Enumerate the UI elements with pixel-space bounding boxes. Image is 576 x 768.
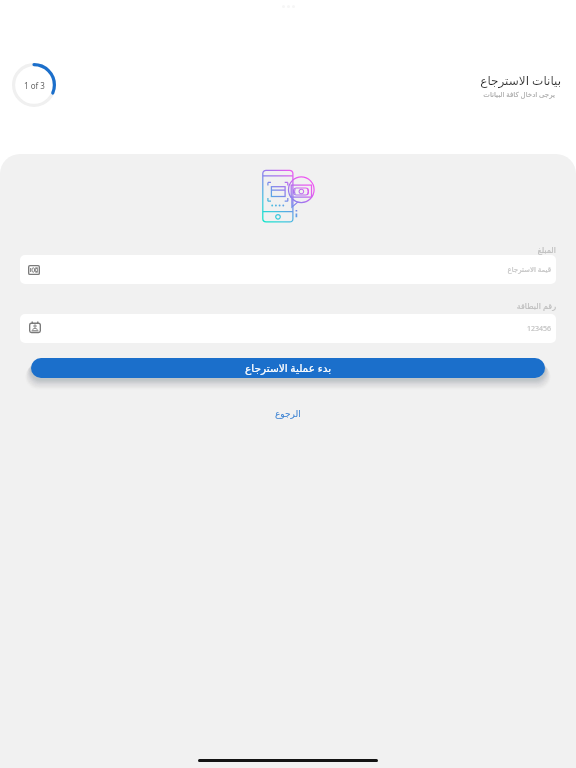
staticText: بدء عملية الاسترجاع xyxy=(245,361,332,375)
staticText: 123456 xyxy=(526,324,551,334)
button[interactable]: قيمة الاسترجاع xyxy=(20,255,556,284)
staticText: يرجى ادخال كافة البيانات xyxy=(483,90,555,100)
staticText: الرجوع xyxy=(275,409,301,419)
staticText: قيمة الاسترجاع xyxy=(507,265,551,275)
staticText: بيانات الاسترجاع xyxy=(480,72,561,88)
staticText: رقم البطاقة xyxy=(516,300,556,311)
other: Step 1 of 3 progress xyxy=(12,63,56,107)
button[interactable]: 123456 xyxy=(20,314,556,343)
staticText: 1 of 3 xyxy=(24,80,45,91)
button[interactable]: بدء عملية الاسترجاع xyxy=(31,358,545,378)
staticText: المبلغ xyxy=(537,246,556,255)
button[interactable]: الرجوع xyxy=(269,407,307,421)
